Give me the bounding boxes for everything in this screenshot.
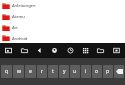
staticText: i <box>85 68 87 75</box>
staticText: r <box>41 68 44 75</box>
button[interactable]: Android <box>0 33 125 43</box>
button[interactable]: y <box>59 65 69 78</box>
staticText: Anleitungen <box>12 3 36 8</box>
staticText: o <box>95 68 99 75</box>
button[interactable]: e <box>25 65 36 78</box>
button[interactable]: Files <box>94 43 107 58</box>
staticText: y <box>63 68 66 75</box>
staticText: Atemu <box>12 14 25 19</box>
button[interactable]: Backspace <box>114 65 124 78</box>
staticText: w <box>17 68 21 75</box>
button[interactable]: Apps <box>79 43 92 58</box>
button[interactable]: p <box>103 65 113 78</box>
button[interactable]: Recent <box>64 43 77 58</box>
button[interactable]: Screenshot <box>110 43 123 58</box>
staticText: Android <box>12 36 28 41</box>
button[interactable]: Back <box>33 43 46 58</box>
button[interactable]: Art <box>0 22 125 33</box>
staticText: p <box>106 68 110 75</box>
button[interactable]: u <box>70 65 80 78</box>
button[interactable]: t <box>48 65 58 78</box>
staticText: u <box>73 68 77 75</box>
button[interactable]: o <box>92 65 102 78</box>
button[interactable]: r <box>37 65 47 78</box>
button[interactable]: Folder <box>18 43 31 58</box>
button[interactable]: Anleitungen <box>0 0 125 11</box>
staticText: t <box>52 68 54 75</box>
staticText: q <box>5 68 9 75</box>
button[interactable]: Atemu <box>0 11 125 22</box>
button[interactable]: q <box>1 65 12 78</box>
button[interactable]: w <box>13 65 24 78</box>
button[interactable]: Gallery <box>2 43 15 58</box>
button[interactable]: i <box>81 65 91 78</box>
staticText: e <box>29 68 32 75</box>
staticText: Art <box>12 25 18 30</box>
button[interactable]: Home <box>48 43 61 58</box>
